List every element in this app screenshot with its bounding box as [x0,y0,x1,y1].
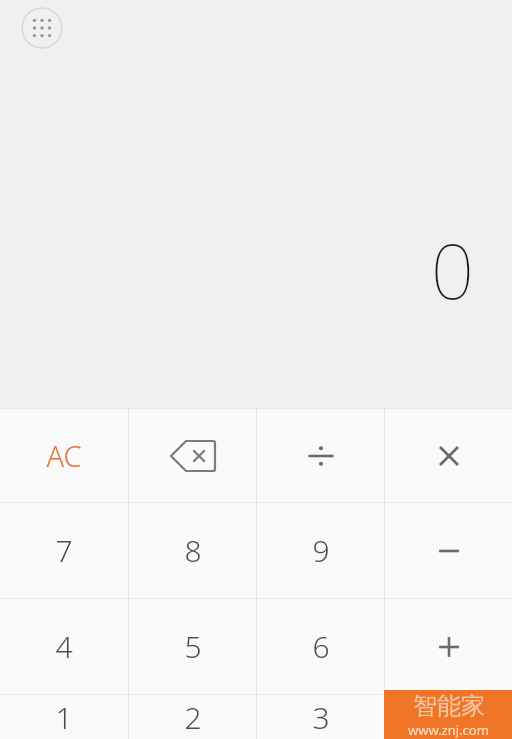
button[interactable]: 4 [0,599,128,694]
button[interactable]: 9 [257,503,384,598]
button[interactable]: = [385,695,512,739]
button[interactable]: 8 [129,503,256,598]
button[interactable]: 3 [257,695,384,739]
staticText: 5 [184,626,202,667]
button[interactable]: AC [0,409,128,502]
staticText: 6 [312,626,330,667]
staticText: 智能家 [413,691,485,721]
button[interactable]: Divide [257,409,384,502]
staticText: 1 [55,697,73,738]
button[interactable]: Multiply [385,409,512,502]
staticText: 2 [184,697,202,738]
button[interactable]: 1 [0,695,128,739]
staticText: = [440,697,458,738]
staticText: AC [46,436,82,475]
staticText: 9 [312,530,330,571]
button[interactable]: 6 [257,599,384,694]
button[interactable]: Backspace [129,409,256,502]
button[interactable]: 7 [0,503,128,598]
staticText: www.znj.com [408,721,489,739]
staticText: 8 [184,530,202,571]
button[interactable]: 5 [129,599,256,694]
staticText: 7 [55,530,73,571]
staticText: 0 [430,218,474,322]
button[interactable]: 2 [129,695,256,739]
button[interactable]: Plus [385,599,512,694]
staticText: 4 [55,626,73,667]
button[interactable]: Apps [21,7,63,49]
staticText: 3 [312,697,330,738]
button[interactable]: Minus [385,503,512,598]
